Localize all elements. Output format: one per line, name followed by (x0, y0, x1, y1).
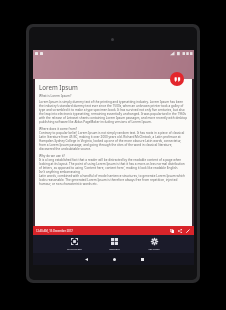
button[interactable]: Recents (135, 253, 149, 265)
button[interactable]: Edit (184, 227, 191, 234)
staticText: WALLPAPERS (67, 247, 82, 250)
staticText: WIDGETS (109, 247, 120, 250)
staticText: SETTINGS (148, 247, 160, 250)
button[interactable]: Back (79, 253, 93, 265)
button[interactable]: WALLPAPERS (61, 237, 87, 251)
button[interactable]: Home (107, 253, 121, 265)
staticText: What is Lorem Ipsum? (39, 94, 72, 98)
staticText: Where does it come from? Contrary to pop… (39, 127, 188, 151)
button[interactable]: WIDGETS (101, 237, 127, 251)
button[interactable]: SETTINGS (141, 237, 167, 251)
button[interactable]: Copy (168, 227, 175, 234)
button[interactable]: Share (176, 227, 183, 234)
staticText: 12:45 AM, 15 December 2017 (36, 229, 73, 233)
button[interactable]: Quote (170, 72, 184, 86)
staticText: Lorem Ipsum (39, 83, 78, 91)
staticText: Why do we use it? It is a long establish… (39, 154, 188, 186)
staticText: Lorem Ipsum is simply dummy text of the … (39, 100, 188, 124)
